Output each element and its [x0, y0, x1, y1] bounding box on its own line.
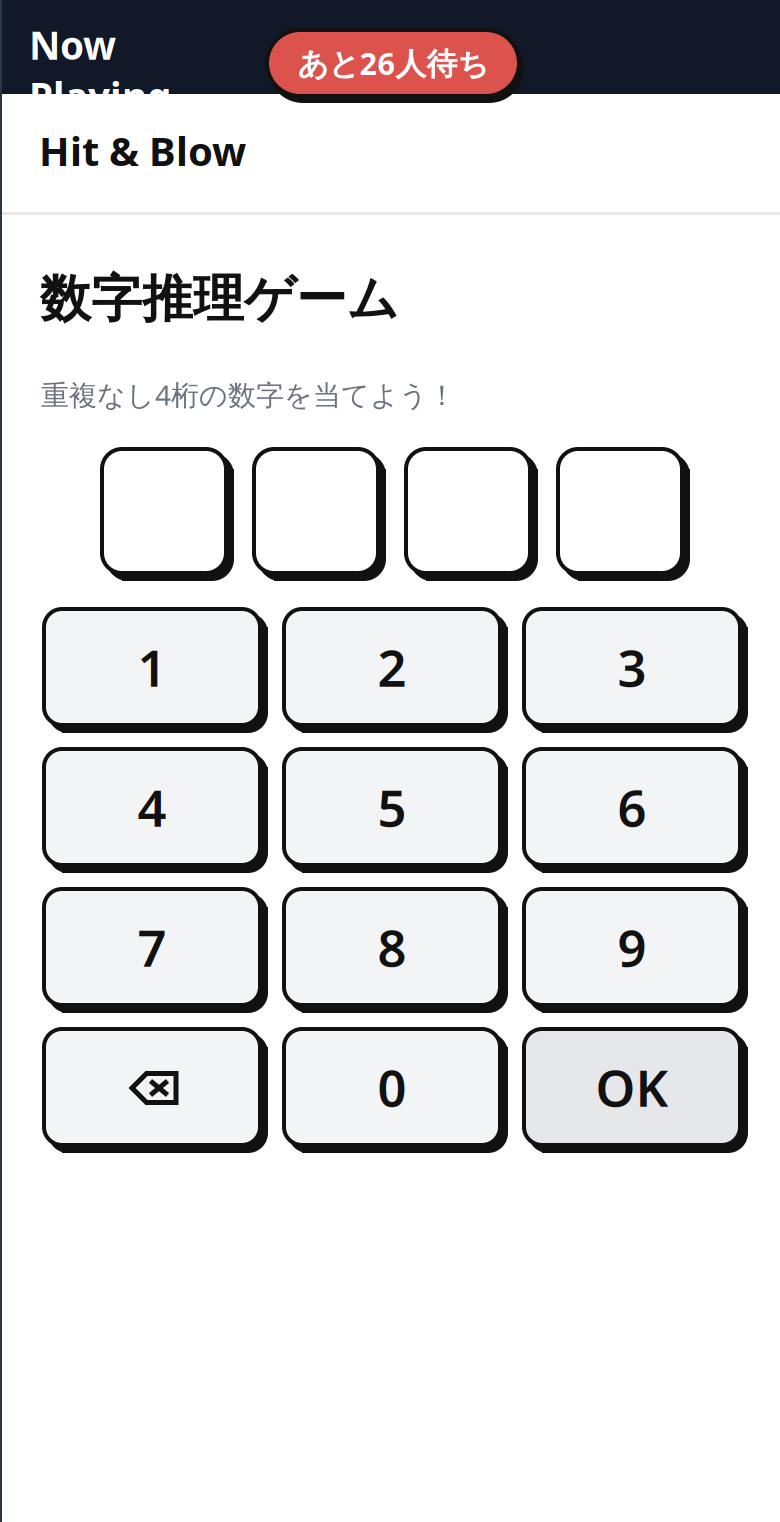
- staticText: OK: [595, 1053, 668, 1121]
- staticText: Now Playing: [29, 19, 171, 122]
- button[interactable]: 3: [522, 607, 748, 733]
- button[interactable]: 5: [282, 747, 508, 873]
- button[interactable]: 7: [42, 887, 268, 1013]
- button[interactable]: Now Playing: [0, 0, 266, 94]
- staticText: 2: [377, 633, 406, 701]
- staticText: 3: [617, 633, 646, 701]
- staticText: 5: [377, 773, 406, 841]
- button[interactable]: 2: [282, 607, 508, 733]
- staticText: 4: [137, 773, 166, 841]
- staticText: 重複なし4桁の数字を当てよう！: [41, 376, 456, 413]
- staticText: 6: [617, 773, 646, 841]
- button[interactable]: Delete: [42, 1027, 268, 1153]
- button[interactable]: 9: [522, 887, 748, 1013]
- staticText: 0: [377, 1053, 406, 1121]
- button[interactable]: あと26人待ち: [265, 28, 525, 104]
- button[interactable]: 0: [282, 1027, 508, 1153]
- button[interactable]: OK: [522, 1027, 748, 1153]
- staticText: 8: [377, 913, 406, 981]
- staticText: 9: [617, 913, 646, 981]
- staticText: Hit & Blow: [39, 124, 246, 177]
- staticText: あと26人待ち: [297, 43, 488, 83]
- button[interactable]: 8: [282, 887, 508, 1013]
- staticText: 数字推理ゲーム: [40, 268, 399, 330]
- staticText: 7: [137, 913, 166, 981]
- button[interactable]: 6: [522, 747, 748, 873]
- staticText: 1: [137, 633, 166, 701]
- button[interactable]: 4: [42, 747, 268, 873]
- button[interactable]: 1: [42, 607, 268, 733]
